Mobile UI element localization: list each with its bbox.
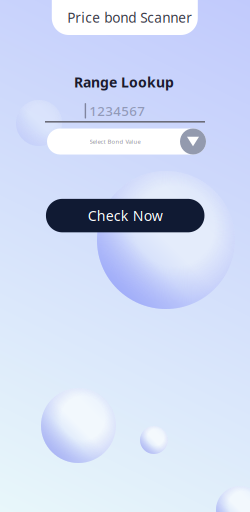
- staticText: Select Bond Value: [89, 137, 140, 145]
- staticText: Check Now: [88, 206, 163, 225]
- staticText: 1234567: [89, 102, 145, 120]
- staticText: Price bond Scanner: [67, 8, 192, 27]
- button[interactable]: Select Bond Value: [47, 128, 206, 154]
- button[interactable]: Check Now: [46, 199, 204, 232]
- staticText: Range Lookup: [74, 72, 174, 92]
